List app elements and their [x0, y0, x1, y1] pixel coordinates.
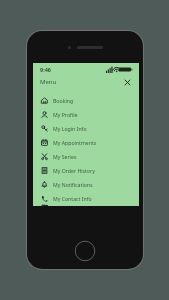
staticText: My Login Info [53, 125, 87, 132]
button[interactable]: Booking [33, 93, 139, 107]
staticText: My Contact Info [53, 195, 92, 202]
button[interactable]: My Contact Info [33, 191, 139, 205]
button[interactable]: My Appointments [33, 135, 139, 149]
button[interactable]: My Series [33, 149, 139, 163]
button[interactable]: My Profile [33, 107, 139, 121]
staticText: My Appointments [53, 139, 97, 146]
button[interactable]: My Login Info [33, 121, 139, 135]
button[interactable]: My Notifications [33, 177, 139, 191]
staticText: My Profile [53, 111, 78, 118]
staticText: 9:46 [40, 66, 51, 73]
button[interactable]: Close menu [123, 78, 132, 87]
staticText: My Series [53, 153, 77, 160]
button[interactable]: My Order History [33, 163, 139, 177]
staticText: My Notifications [53, 181, 93, 188]
staticText: Booking [53, 97, 74, 104]
staticText: My Order History [53, 167, 95, 174]
button[interactable]: Log Out [33, 205, 139, 206]
staticText: Menu [40, 78, 57, 86]
